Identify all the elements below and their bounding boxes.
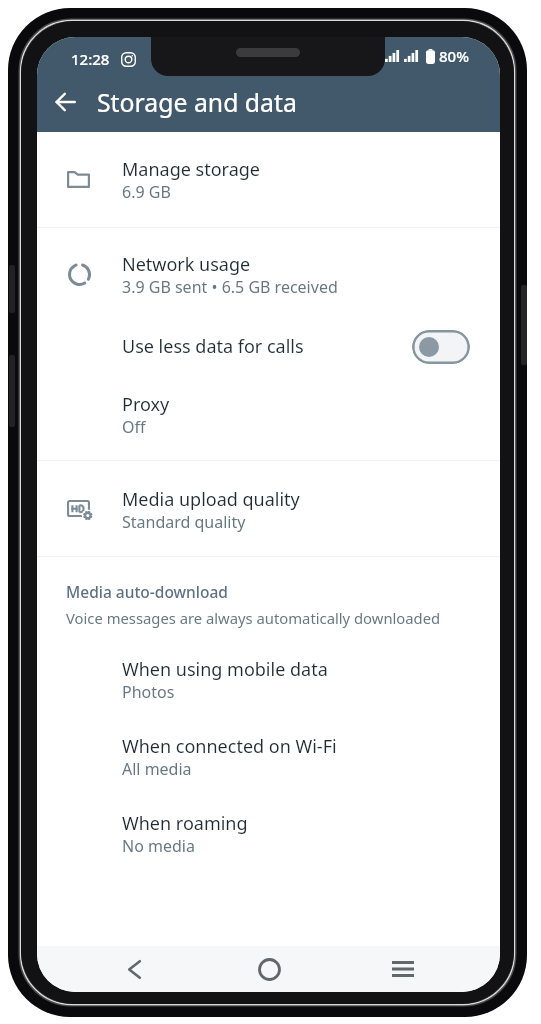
staticText: All media [122, 758, 192, 780]
button[interactable]: Recent apps [379, 946, 427, 992]
staticText: When roaming [122, 811, 248, 836]
staticText: No media [122, 835, 195, 857]
button[interactable]: When using mobile data [37, 637, 500, 716]
staticText: When using mobile data [122, 657, 328, 682]
button[interactable]: Use less data for calls toggle [412, 330, 470, 364]
staticText: Manage storage [122, 157, 260, 182]
button[interactable]: Back [110, 946, 158, 992]
button[interactable]: Network usage [37, 228, 500, 310]
button[interactable]: Back [41, 78, 89, 126]
button[interactable]: When connected on Wi-Fi [37, 716, 500, 796]
staticText: Standard quality [122, 511, 246, 533]
button[interactable]: Manage storage [37, 137, 500, 227]
staticText: When connected on Wi-Fi [122, 734, 337, 759]
button[interactable]: When roaming [37, 796, 500, 876]
button[interactable]: Media upload quality [37, 461, 500, 556]
staticText: Storage and data [97, 85, 297, 119]
staticText: Proxy [122, 392, 170, 417]
staticText: Off [122, 416, 146, 438]
staticText: Photos [122, 681, 175, 703]
staticText: 3.9 GB sent • 6.5 GB received [122, 276, 338, 298]
staticText: Voice messages are always automatically … [66, 608, 441, 628]
staticText: Network usage [122, 252, 251, 277]
staticText: Use less data for calls [122, 334, 304, 359]
staticText: 80% [439, 46, 469, 66]
staticText: 6.9 GB [122, 181, 171, 203]
staticText: Media auto-download [66, 581, 228, 602]
staticText: Media upload quality [122, 487, 300, 512]
button[interactable]: Home [245, 946, 293, 992]
staticText: 12:28 [71, 49, 110, 69]
button[interactable]: Proxy [37, 367, 500, 460]
button[interactable]: Use less data for calls [37, 310, 500, 367]
